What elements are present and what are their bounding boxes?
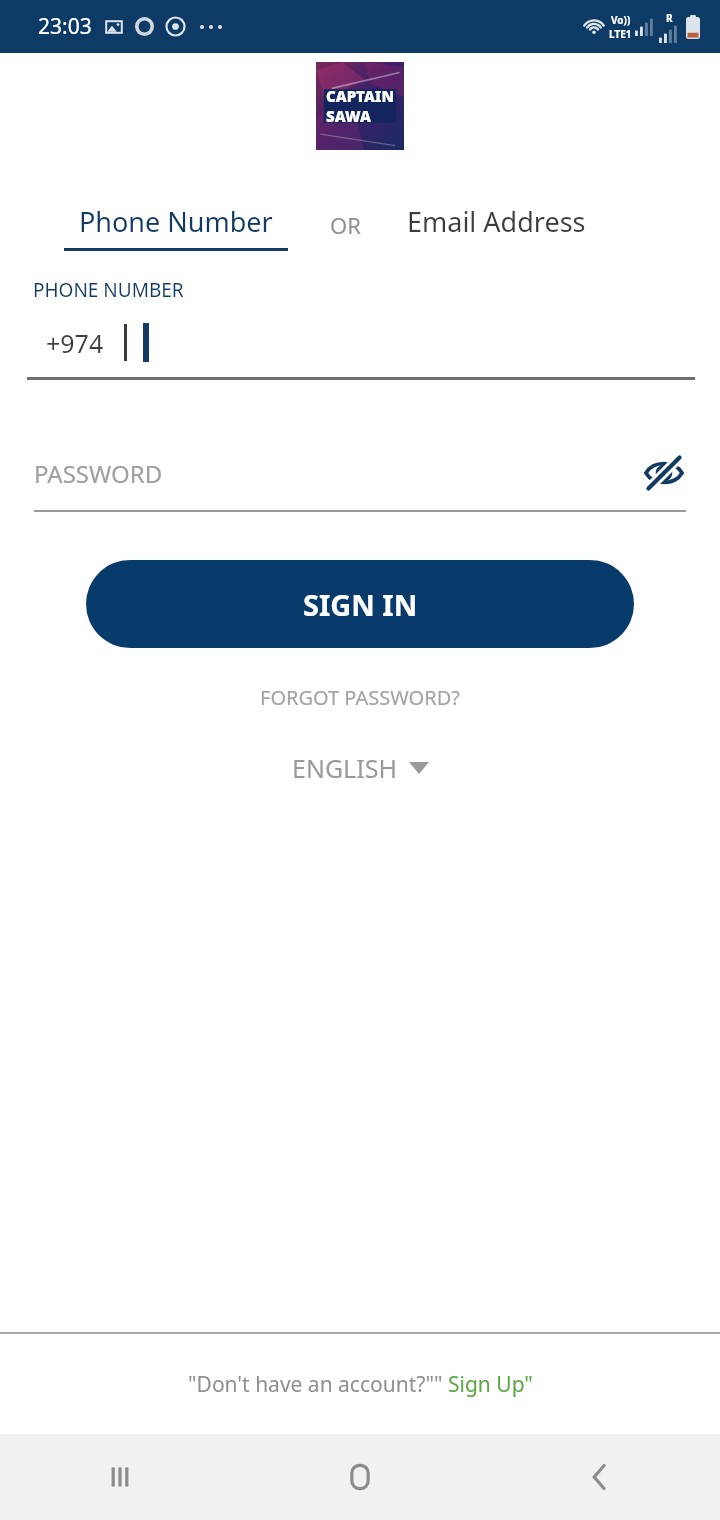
button[interactable]: ENGLISH [286,745,435,791]
staticText: +974 [46,326,104,360]
staticText: PHONE NUMBER [33,277,184,303]
button[interactable]: Recents [0,1434,240,1520]
button[interactable]: Show password [642,451,686,495]
button[interactable]: FORGOT PASSWORD? [254,678,466,717]
button[interactable]: Back [480,1434,720,1520]
staticText: 23:03 [38,12,92,41]
button[interactable]: Phone Number [64,203,288,251]
button[interactable]: Email Address [407,203,586,251]
staticText: ENGLISH [292,751,397,785]
staticText: Phone Number [79,203,273,240]
button[interactable]: PASSWORD [34,446,686,500]
button[interactable]: "Don't have an account?"" Sign Up" [0,1334,720,1434]
button[interactable]: +974 [27,315,695,369]
staticText: LTE1 [609,27,632,41]
staticText: "Don't have an account?"" Sign Up" [188,1370,533,1399]
staticText: CAPTAIN [326,86,394,106]
staticText: R [666,11,673,25]
staticText: PASSWORD [34,457,163,490]
staticText: OR [330,210,361,240]
button[interactable]: SIGN IN [86,560,634,648]
staticText: SAWA [326,106,371,126]
button[interactable]: Home [240,1434,480,1520]
staticText: Vo)) [611,13,631,27]
staticText: SIGN IN [303,585,418,624]
